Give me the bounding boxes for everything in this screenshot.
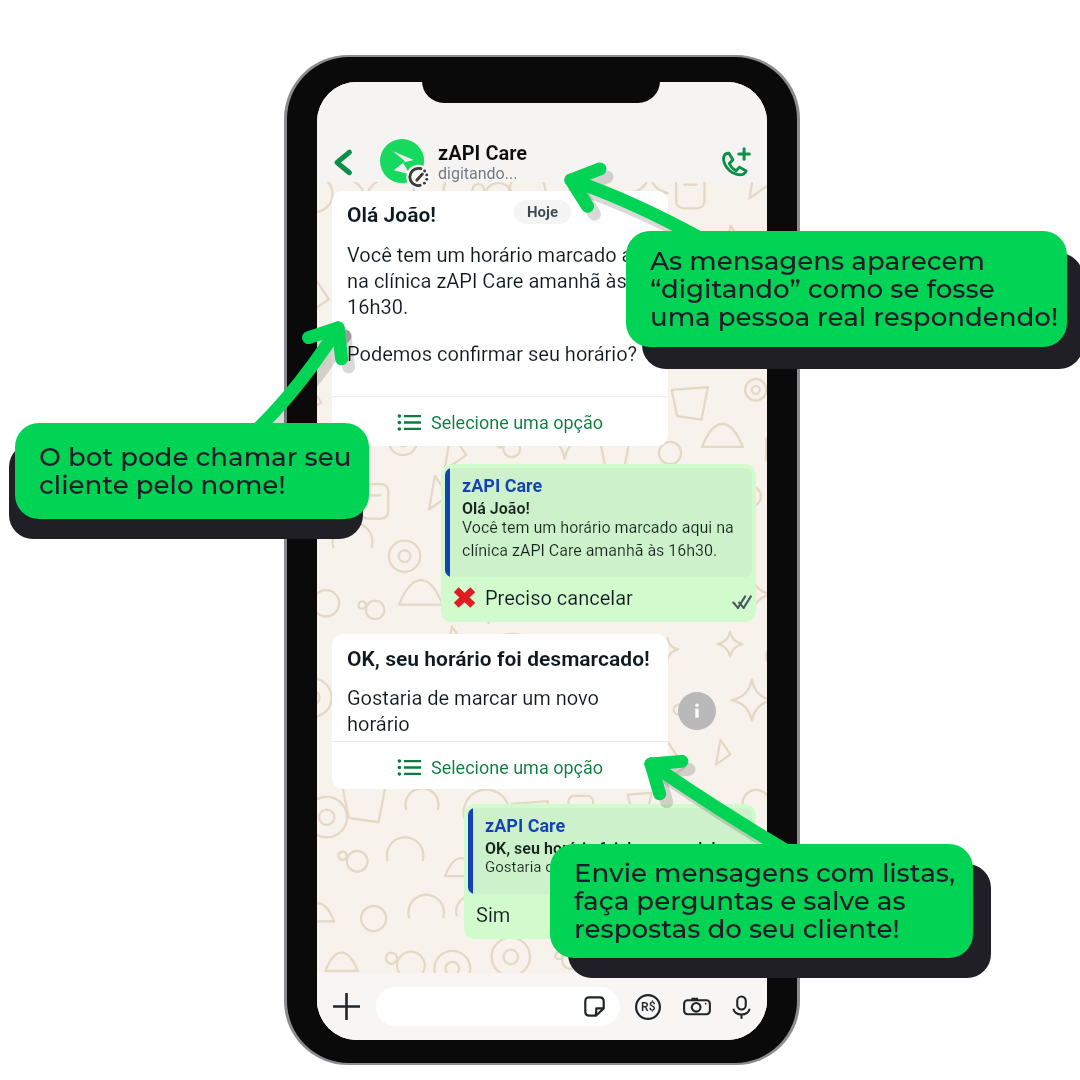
button[interactable]: Add call (715, 142, 755, 182)
button[interactable]: O bot pode chamar seu cliente pelo nome! (15, 423, 369, 519)
staticText: Hoje (527, 203, 559, 221)
button[interactable]: Selecione uma opção (332, 397, 668, 446)
staticText: Olá João! (462, 499, 530, 518)
staticText: Gostaria de marcar um novo horário (485, 858, 725, 876)
button[interactable]: OK, seu horário foi desmarcado! (332, 634, 668, 789)
button[interactable]: Camera (681, 991, 713, 1023)
staticText: Você tem um horário marcado aqui na clín… (347, 243, 660, 318)
staticText: Selecione uma opção (431, 412, 603, 433)
button[interactable]: Info (678, 692, 716, 730)
button[interactable]: Voice message (726, 992, 756, 1022)
button[interactable]: zAPI Care (441, 464, 756, 622)
button[interactable]: Back (323, 142, 363, 182)
button[interactable]: As mensagens aparecem “digitando” como s… (626, 231, 1067, 347)
staticText: OK, seu horário foi desmarcado! (347, 647, 650, 672)
staticText: zAPI Care (485, 815, 566, 836)
staticText: Envie mensagens com listas, faça pergunt… (574, 857, 956, 945)
staticText: Você tem um horário marcado aqui na clín… (462, 518, 734, 560)
staticText: OK, seu horário foi desmarcado! (485, 839, 716, 858)
button[interactable]: Attach (330, 990, 363, 1023)
button[interactable]: zAPI Care (464, 804, 756, 939)
staticText: zAPI Care (462, 475, 543, 496)
button[interactable]: Selecione uma opção (332, 742, 668, 789)
staticText: O bot pode chamar seu cliente pelo nome! (39, 441, 352, 501)
button[interactable]: Envie mensagens com listas, faça pergunt… (550, 844, 973, 958)
staticText: Olá João! (347, 203, 437, 228)
staticText: As mensagens aparecem “digitando” como s… (650, 245, 1059, 333)
staticText: Selecione uma opção (431, 757, 603, 778)
staticText: zAPI Care (438, 141, 528, 164)
button[interactable]: Olá João! (332, 191, 668, 446)
staticText: Preciso cancelar (485, 586, 633, 609)
staticText: R$ (641, 1000, 656, 1014)
staticText: Sim (476, 903, 511, 926)
staticText: Podemos confirmar seu horário? (347, 342, 638, 365)
staticText: digitando... (438, 164, 518, 183)
staticText: Gostaria de marcar um novo horário (347, 686, 599, 735)
button[interactable]: Payments (632, 991, 664, 1023)
button[interactable] (376, 987, 620, 1026)
